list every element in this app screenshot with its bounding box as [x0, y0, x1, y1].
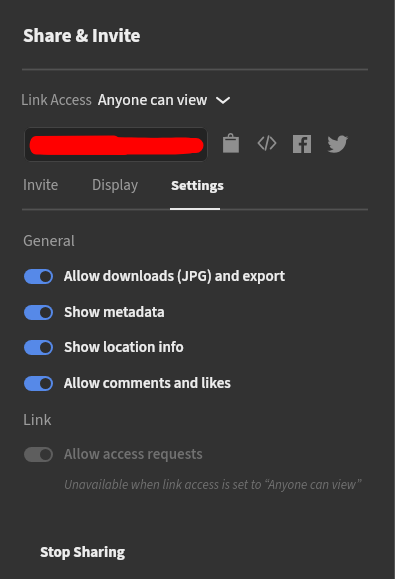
staticText: Stop Sharing — [40, 542, 125, 563]
staticText: Allow comments and likes — [64, 373, 231, 394]
button[interactable]: Share on Facebook — [289, 132, 311, 154]
button[interactable]: Invite — [19, 171, 63, 200]
button[interactable]: Stop Sharing — [36, 538, 129, 567]
button[interactable]: Embed code — [255, 131, 279, 155]
button[interactable]: Share on Twitter — [326, 133, 348, 155]
button[interactable]: Show location info — [18, 333, 192, 362]
button[interactable]: Allow downloads (JPG) and export — [18, 262, 293, 291]
staticText: General — [23, 230, 75, 253]
staticText: Allow downloads (JPG) and export — [64, 266, 285, 287]
button[interactable]: Allow comments and likes — [18, 369, 239, 398]
button[interactable]: Link Access — [17, 86, 236, 114]
staticText: Anyone can view — [98, 89, 208, 111]
staticText: Show location info — [64, 337, 184, 358]
staticText: Link Access — [21, 90, 92, 111]
button[interactable]: Copy link — [220, 130, 244, 154]
staticText: Settings — [171, 175, 224, 196]
staticText: Display — [92, 175, 138, 196]
staticText: Invite — [23, 175, 59, 196]
button[interactable] — [24, 127, 208, 162]
staticText: Share & Invite — [23, 23, 141, 50]
button[interactable]: Settings — [167, 171, 228, 200]
staticText: Link — [23, 409, 52, 432]
staticText: Allow access requests — [64, 444, 203, 465]
button[interactable]: Display — [88, 171, 142, 200]
button[interactable]: Allow access requests — [18, 440, 211, 469]
button[interactable]: Show metadata — [18, 298, 173, 327]
staticText: Show metadata — [64, 302, 165, 323]
staticText: Unavailable when link access is set to “… — [64, 476, 362, 495]
